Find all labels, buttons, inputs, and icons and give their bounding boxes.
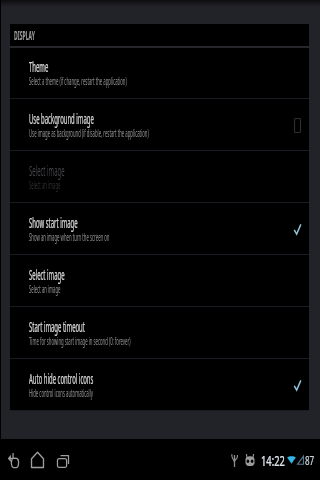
staticText: Show an image when turn the screen on	[29, 230, 110, 244]
other: Wifi	[287, 454, 296, 466]
button[interactable]: Recents	[50, 441, 75, 479]
other: Notification	[245, 454, 255, 466]
other: USB connected	[231, 454, 238, 467]
button[interactable]: Use background image	[10, 99, 309, 151]
button[interactable]: Theme	[10, 48, 309, 99]
button[interactable]: Start image timeout	[10, 307, 309, 359]
other: Battery	[297, 454, 304, 466]
staticText: Time for showing start image in second (…	[29, 334, 131, 348]
button[interactable]: Home	[25, 441, 50, 479]
staticText: Select a theme (if change, restart the a…	[29, 74, 127, 88]
button[interactable]: Back	[1, 441, 25, 479]
staticText: Theme	[29, 57, 49, 76]
staticText: Show start image	[29, 213, 78, 232]
button[interactable]: Auto hide control icons	[10, 359, 309, 411]
staticText: 14:22	[261, 450, 285, 470]
button[interactable]: Show start image	[10, 203, 309, 255]
staticText: Select an image	[29, 178, 61, 192]
staticText: Select an image	[29, 282, 61, 296]
staticText: Auto hide control icons	[29, 369, 94, 388]
staticText: Use background image	[29, 109, 94, 128]
staticText: Hide control icons automatically	[29, 386, 93, 400]
staticText: Use image as background (if disable, res…	[29, 126, 149, 140]
staticText: Select image	[29, 265, 65, 284]
button[interactable]: Select image	[10, 151, 309, 203]
button[interactable]: Select image	[10, 255, 309, 307]
staticText: Start image timeout	[29, 317, 85, 336]
staticText: 87	[305, 451, 314, 469]
staticText: Select image	[29, 161, 65, 180]
staticText: DISPLAY	[14, 27, 35, 43]
